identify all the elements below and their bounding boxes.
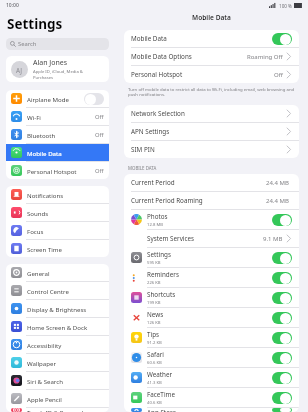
button[interactable]: Tips <box>124 328 299 347</box>
button[interactable]: Sounds <box>6 204 109 221</box>
button[interactable]: Shortcuts <box>124 288 299 307</box>
button[interactable]: Personal Hotspot <box>6 162 109 179</box>
button[interactable]: On <box>272 272 292 284</box>
button[interactable]: AJ <box>6 56 109 82</box>
button[interactable]: Mobile Data <box>6 144 109 161</box>
button[interactable]: Airplane Mode <box>6 90 109 107</box>
staticText: Settings <box>7 15 63 33</box>
staticText: Network Selection <box>131 109 185 118</box>
button[interactable]: Current Period Roaming <box>124 192 299 209</box>
button[interactable]: On <box>272 352 292 364</box>
button[interactable]: Mobile Data Options <box>124 48 299 65</box>
staticText: SIM PIN <box>131 145 155 154</box>
button[interactable]: FaceTime <box>124 388 299 407</box>
button[interactable]: SIM PIN <box>124 141 299 158</box>
staticText: 199 KB <box>147 300 161 306</box>
button[interactable]: Bluetooth <box>6 126 109 143</box>
staticText: Mobile Data <box>27 149 62 157</box>
staticText: 100 % <box>279 3 292 9</box>
staticText: Focus <box>27 227 44 235</box>
staticText: Accessibility <box>27 341 62 349</box>
staticText: 60.6 KB <box>147 360 162 366</box>
staticText: Off <box>95 167 104 175</box>
button[interactable]: System Services <box>124 230 299 247</box>
button[interactable]: On <box>272 332 292 344</box>
staticText: Current Period <box>131 178 175 187</box>
staticText: APN Settings <box>131 127 170 136</box>
staticText: Tips <box>147 330 160 339</box>
staticText: Bluetooth <box>27 131 56 139</box>
button[interactable]: Photos <box>124 210 299 229</box>
button[interactable]: On <box>272 408 292 412</box>
staticText: 10:00 <box>6 2 19 9</box>
staticText: Apple ID, iCloud, Media & Purchases <box>33 69 104 80</box>
staticText: Turn off mobile data to restrict all dat… <box>128 86 295 97</box>
button[interactable]: Display & Brightness <box>6 300 109 317</box>
button[interactable]: On <box>272 252 292 264</box>
staticText: Mobile Data <box>131 34 167 43</box>
button[interactable]: Wi-Fi <box>6 108 109 125</box>
button[interactable]: Search <box>6 38 109 50</box>
staticText: Search <box>18 40 37 48</box>
staticText: 595 KB <box>147 260 161 266</box>
staticText: Display & Brightness <box>27 305 87 313</box>
button[interactable]: Accessibility <box>6 336 109 353</box>
button[interactable]: Settings <box>124 248 299 267</box>
button[interactable]: On <box>272 392 292 404</box>
button[interactable]: On <box>272 292 292 304</box>
staticText: 12.8 MB <box>147 222 163 228</box>
button[interactable]: Network Selection <box>124 105 299 122</box>
staticText: Photos <box>147 212 168 221</box>
staticText: Settings <box>147 250 171 259</box>
button[interactable]: Notifications <box>6 186 109 203</box>
staticText: Shortcuts <box>147 290 176 299</box>
staticText: Current Period Roaming <box>131 196 203 205</box>
button[interactable]: Screen Time <box>6 240 109 257</box>
staticText: Personal Hotspot <box>131 70 183 79</box>
button[interactable]: Off <box>84 93 104 105</box>
button[interactable]: Reminders <box>124 268 299 287</box>
staticText: Siri & Search <box>27 377 63 385</box>
staticText: Mobile Data <box>192 13 231 22</box>
staticText: Screen Time <box>27 245 62 253</box>
button[interactable]: APN Settings <box>124 123 299 140</box>
button[interactable]: App Store <box>124 408 299 412</box>
staticText: System Services <box>147 234 195 243</box>
staticText: Off <box>95 131 104 139</box>
button[interactable]: Safari <box>124 348 299 367</box>
button[interactable]: Mobile Data <box>124 30 299 47</box>
button[interactable]: News <box>124 308 299 327</box>
staticText: App Store <box>147 408 176 412</box>
button[interactable]: Siri & Search <box>6 372 109 389</box>
staticText: AJ <box>16 66 23 74</box>
staticText: Alan Jones <box>33 58 68 68</box>
staticText: Wi-Fi <box>27 113 41 121</box>
staticText: 24.4 MB <box>266 179 289 187</box>
staticText: Notifications <box>27 191 64 199</box>
button[interactable]: Current Period <box>124 174 299 191</box>
button[interactable]: General <box>6 264 109 281</box>
staticText: News <box>147 310 164 319</box>
button[interactable]: Weather <box>124 368 299 387</box>
staticText: Home Screen & Dock <box>27 323 88 331</box>
button[interactable]: Personal Hotspot <box>124 66 299 83</box>
button[interactable]: Touch ID & Passcode <box>6 408 109 412</box>
staticText: Off <box>274 71 283 79</box>
button[interactable]: On <box>272 33 292 45</box>
staticText: MOBILE DATA <box>128 165 157 171</box>
button[interactable]: Control Centre <box>6 282 109 299</box>
button[interactable]: Focus <box>6 222 109 239</box>
button[interactable]: Apple Pencil <box>6 390 109 407</box>
button[interactable]: On <box>272 312 292 324</box>
button[interactable]: On <box>272 214 292 226</box>
button[interactable]: Wallpaper <box>6 354 109 371</box>
staticText: Wallpaper <box>27 359 56 367</box>
staticText: General <box>27 269 50 277</box>
staticText: 40.6 KB <box>147 400 162 406</box>
staticText: Reminders <box>147 270 179 279</box>
staticText: Safari <box>147 350 164 359</box>
staticText: 24.4 MB <box>266 197 289 205</box>
button[interactable]: On <box>272 372 292 384</box>
button[interactable]: Home Screen & Dock <box>6 318 109 335</box>
staticText: 226 KB <box>147 280 161 286</box>
